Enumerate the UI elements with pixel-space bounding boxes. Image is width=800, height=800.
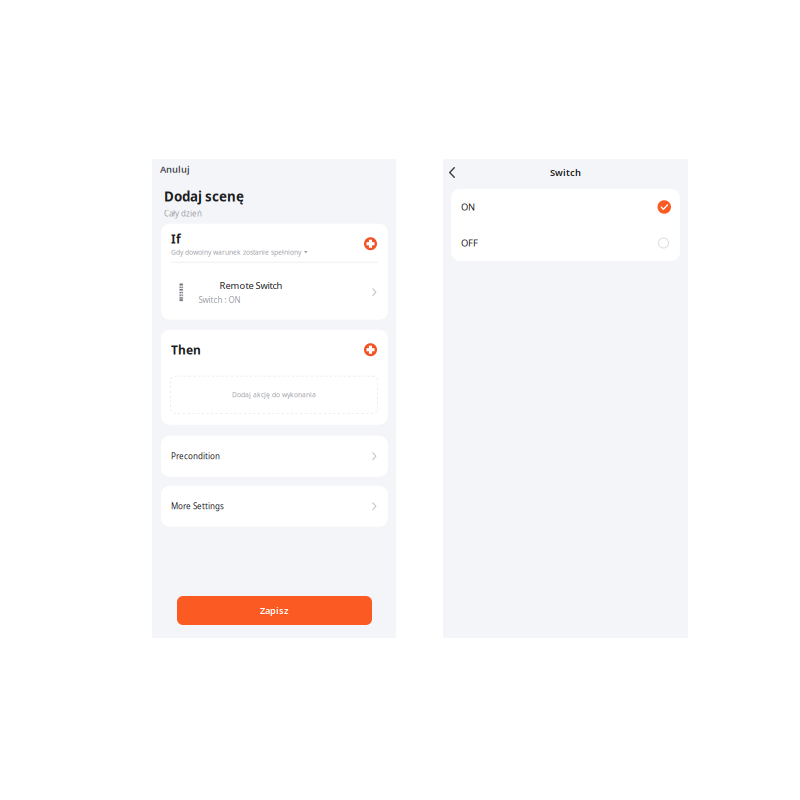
button[interactable]: More Settings xyxy=(161,486,388,527)
staticText: Then xyxy=(171,342,201,358)
staticText: Remote Switch xyxy=(219,279,282,292)
staticText: Precondition xyxy=(171,451,220,461)
staticText: Dodaj scenę xyxy=(164,187,244,205)
staticText: Anuluj xyxy=(160,163,190,175)
staticText: ON xyxy=(461,201,475,213)
button[interactable]: Back xyxy=(443,163,465,182)
staticText: Zapisz xyxy=(260,604,289,617)
staticText: Switch : ON xyxy=(198,295,240,305)
staticText: Cały dzień xyxy=(164,208,202,219)
staticText: If xyxy=(171,231,181,247)
staticText: Gdy dowolny warunek zostanie spełniony xyxy=(171,248,301,257)
staticText: Switch xyxy=(550,166,581,179)
button[interactable]: Zapisz xyxy=(177,596,372,625)
button[interactable]: Add condition xyxy=(362,235,379,252)
button[interactable]: Add action xyxy=(362,341,379,358)
button[interactable]: Dodaj akcję do wykonania xyxy=(170,376,378,414)
button[interactable]: Anuluj xyxy=(152,159,198,179)
button[interactable]: ON xyxy=(451,189,680,225)
staticText: Dodaj akcję do wykonania xyxy=(232,390,316,399)
staticText: More Settings xyxy=(171,501,224,511)
button[interactable]: OFF xyxy=(451,225,680,261)
button[interactable]: Precondition xyxy=(161,436,388,477)
staticText: OFF xyxy=(461,237,478,249)
button[interactable]: Remote Switch xyxy=(161,263,388,322)
